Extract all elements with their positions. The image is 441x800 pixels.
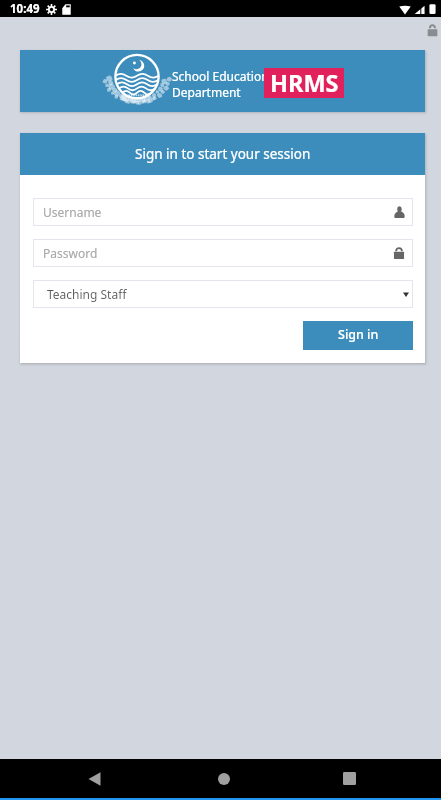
button[interactable]: Username <box>33 198 413 226</box>
button[interactable]: Back <box>77 761 112 796</box>
button[interactable]: Recent apps <box>332 761 367 796</box>
staticText: Sign in to start your session <box>135 145 311 163</box>
staticText: School Education <box>172 68 269 84</box>
staticText: Password <box>43 245 98 261</box>
button[interactable]: Home <box>206 761 241 796</box>
staticText: Teaching Staff <box>47 286 127 302</box>
button[interactable]: Teaching Staff <box>33 280 413 308</box>
staticText: Department <box>172 84 241 100</box>
other: Secure connection <box>427 24 438 37</box>
staticText: Sign in <box>338 326 379 343</box>
button[interactable]: Password <box>33 239 413 267</box>
button[interactable]: Sign in <box>303 321 413 350</box>
staticText: HRMS <box>270 67 339 97</box>
staticText: Username <box>43 204 102 220</box>
staticText: 10:49 <box>10 1 40 17</box>
